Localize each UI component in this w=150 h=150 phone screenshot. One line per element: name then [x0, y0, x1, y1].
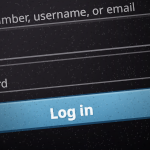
button[interactable]: Log in screen photo — [0, 0, 150, 150]
